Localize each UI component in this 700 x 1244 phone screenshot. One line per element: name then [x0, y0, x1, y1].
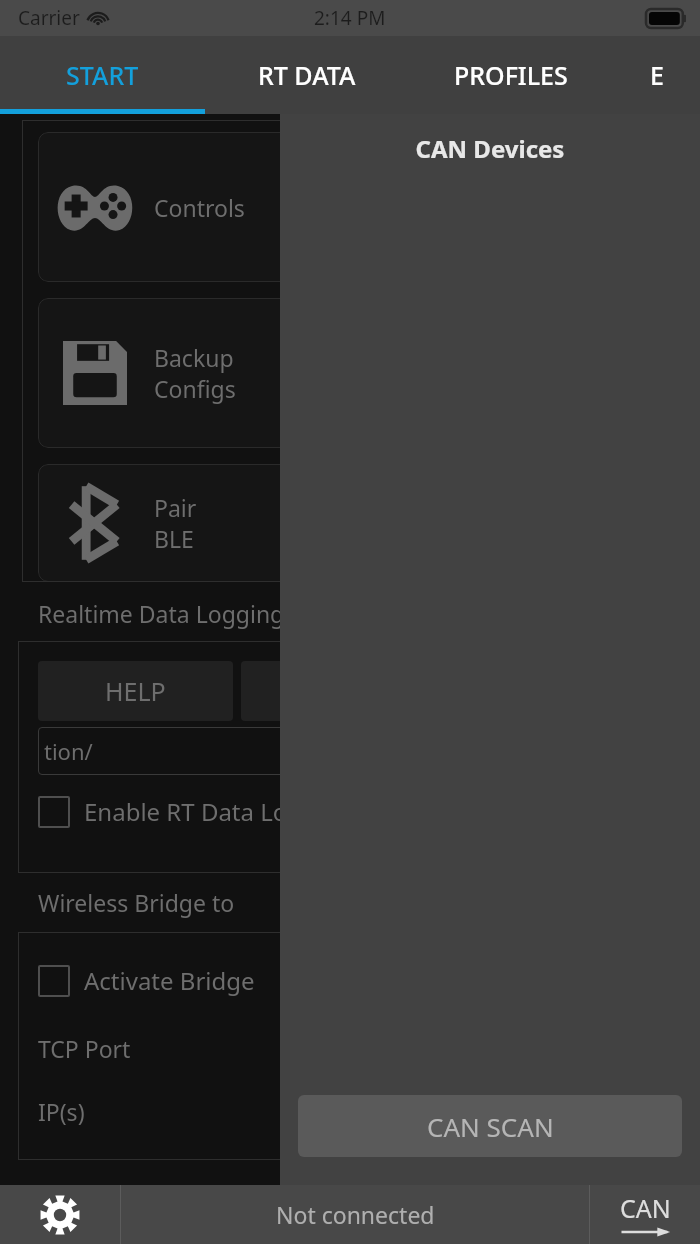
- staticText: Pair: [154, 492, 197, 523]
- button[interactable]: RT DATA: [205, 36, 409, 114]
- button[interactable]: Backup Configs: [38, 298, 290, 448]
- button[interactable]: Activate Bridge: [38, 964, 255, 997]
- staticText: Enable RT Data Lo: [84, 795, 288, 828]
- staticText: RT DATA: [258, 58, 356, 92]
- other: Backup Configs: [63, 341, 127, 405]
- button[interactable]: Enable RT Data Lo: [38, 795, 288, 828]
- staticText: E: [650, 58, 664, 92]
- button[interactable]: E: [613, 36, 700, 114]
- staticText: Activate Bridge: [84, 964, 255, 997]
- staticText: Controls: [154, 192, 245, 223]
- staticText: CAN: [620, 1191, 671, 1225]
- staticText: Not connected: [276, 1199, 435, 1230]
- staticText: TCP Port: [38, 1033, 131, 1064]
- staticText: 2:14 PM: [314, 5, 386, 31]
- button[interactable]: CAN SCAN: [298, 1095, 682, 1157]
- button[interactable]: Settings: [0, 1185, 120, 1244]
- staticText: Realtime Data Logging: [38, 598, 285, 629]
- staticText: tion/D4355B91-0BDB-4F9: [44, 736, 290, 766]
- button[interactable]: Not connected: [121, 1185, 589, 1244]
- button[interactable]: START: [0, 36, 205, 114]
- staticText: HELP: [105, 674, 166, 708]
- staticText: Wireless Bridge to Com: [38, 887, 290, 918]
- staticText: PROFILES: [454, 58, 568, 92]
- other: Pair BLE: [69, 483, 121, 563]
- staticText: START: [66, 58, 139, 92]
- staticText: IP(s): [38, 1096, 85, 1127]
- staticText: Carrier: [18, 5, 80, 31]
- staticText: Configs: [154, 373, 236, 404]
- button[interactable]: Pair BLE: [38, 464, 290, 582]
- staticText: CAN SCAN: [427, 1109, 554, 1144]
- staticText: Backup: [154, 342, 234, 373]
- staticText: BLE: [154, 523, 194, 554]
- other: Controls: [54, 182, 136, 232]
- button[interactable]: CAN: [590, 1185, 700, 1244]
- button[interactable]: PROFILES: [409, 36, 613, 114]
- staticText: CAN Devices: [280, 132, 700, 165]
- button[interactable]: [241, 661, 290, 721]
- button[interactable]: HELP: [38, 661, 233, 721]
- button[interactable]: Controls: [38, 132, 290, 282]
